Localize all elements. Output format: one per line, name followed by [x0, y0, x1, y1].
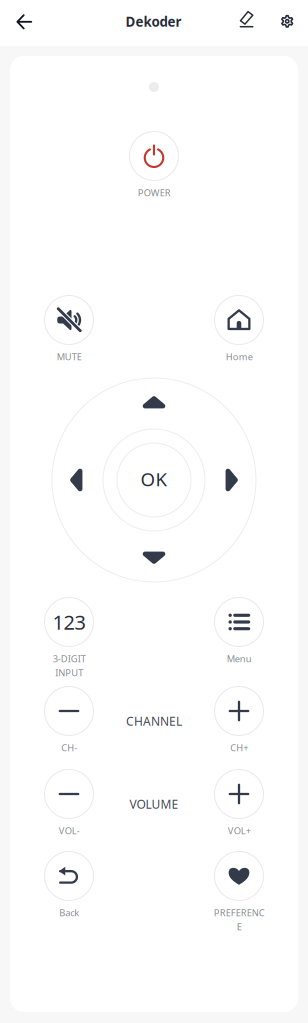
staticText: CHANNEL — [126, 713, 182, 729]
button[interactable]: VOL- — [28, 769, 110, 855]
staticText: Menu — [226, 652, 251, 665]
staticText: PREFERENC E — [213, 906, 264, 933]
button[interactable]: CH- — [28, 686, 110, 772]
staticText: 123 — [52, 609, 85, 635]
button[interactable]: Menu — [198, 597, 280, 683]
staticText: 3-DIGIT INPUT — [52, 652, 85, 679]
button[interactable]: Settings — [269, 0, 305, 42]
staticText: OK — [140, 467, 167, 491]
button[interactable]: Back — [3, 1, 45, 43]
staticText: Dekoder — [125, 13, 181, 30]
staticText: Home — [225, 350, 252, 363]
button[interactable]: CH+ — [198, 686, 280, 772]
button[interactable]: 3-DIGIT INPUT — [28, 597, 110, 683]
staticText: CH- — [61, 741, 77, 754]
button[interactable]: MUTE — [28, 295, 110, 381]
staticText: Back — [59, 906, 79, 919]
staticText: VOLUME — [129, 796, 178, 812]
button[interactable]: Preference — [198, 851, 280, 937]
button[interactable]: Home — [198, 295, 280, 381]
button[interactable]: Back — [28, 851, 110, 937]
staticText: VOL- — [58, 824, 79, 837]
staticText: POWER — [137, 186, 170, 199]
staticText: MUTE — [56, 350, 81, 363]
button[interactable]: Edit — [228, 0, 264, 42]
staticText: VOL+ — [227, 824, 250, 837]
button[interactable]: VOL+ — [198, 769, 280, 855]
button[interactable]: Power — [113, 131, 195, 217]
staticText: CH+ — [230, 741, 248, 754]
